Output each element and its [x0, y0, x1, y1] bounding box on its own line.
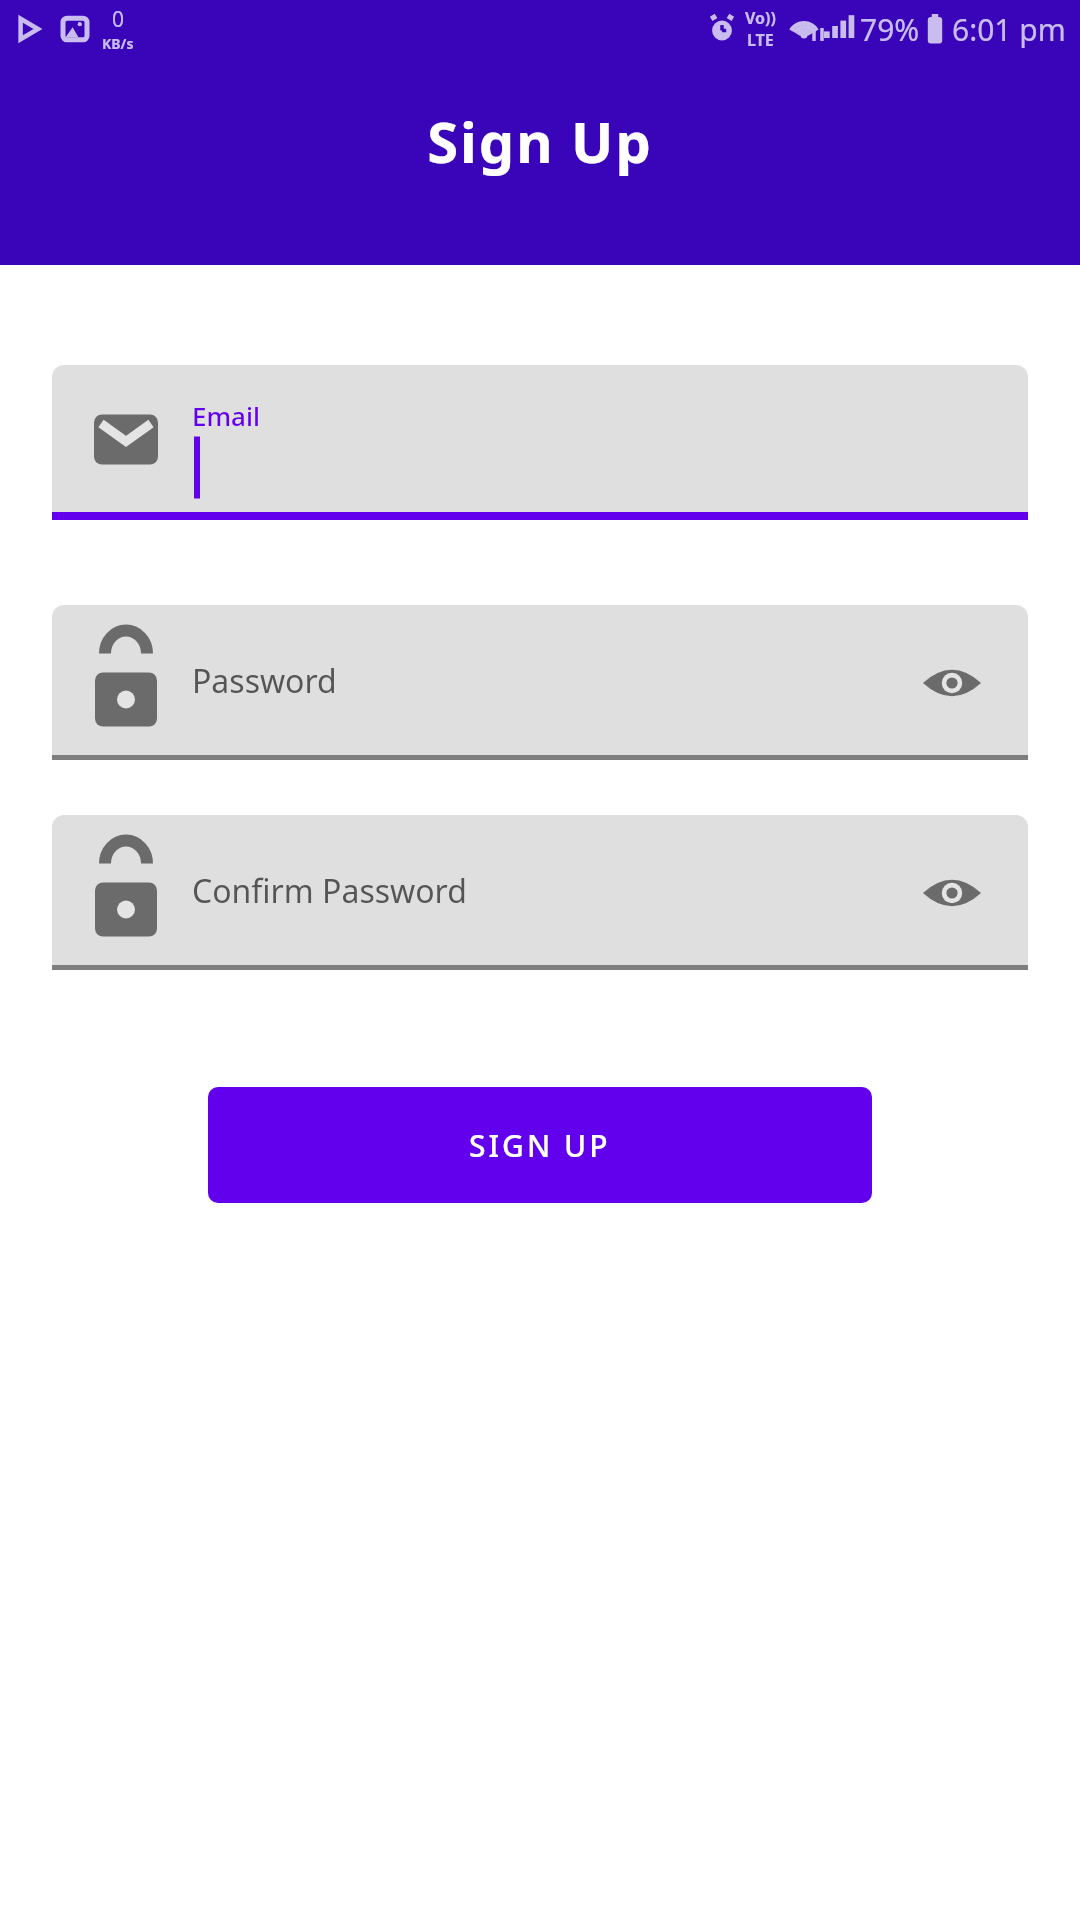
staticText: Email [192, 398, 261, 433]
button[interactable]: Password [52, 605, 1028, 760]
button[interactable]: Email [52, 365, 1028, 520]
button[interactable]: SIGN UP [208, 1087, 872, 1203]
button[interactable]: Confirm Password [52, 815, 1028, 970]
staticText: Password [192, 659, 337, 703]
staticText: KB/s [102, 34, 134, 53]
staticText: LTE [747, 29, 774, 51]
staticText: 6:01 pm [952, 9, 1066, 50]
staticText: 79% [860, 9, 920, 50]
staticText: 0 [112, 5, 125, 34]
staticText: Confirm Password [192, 869, 467, 913]
button[interactable]: Show password [904, 635, 1000, 731]
staticText: Sign Up [0, 103, 1080, 179]
staticText: Vo)) [745, 7, 776, 29]
staticText: SIGN UP [469, 1125, 611, 1166]
button[interactable]: Show password [904, 845, 1000, 941]
